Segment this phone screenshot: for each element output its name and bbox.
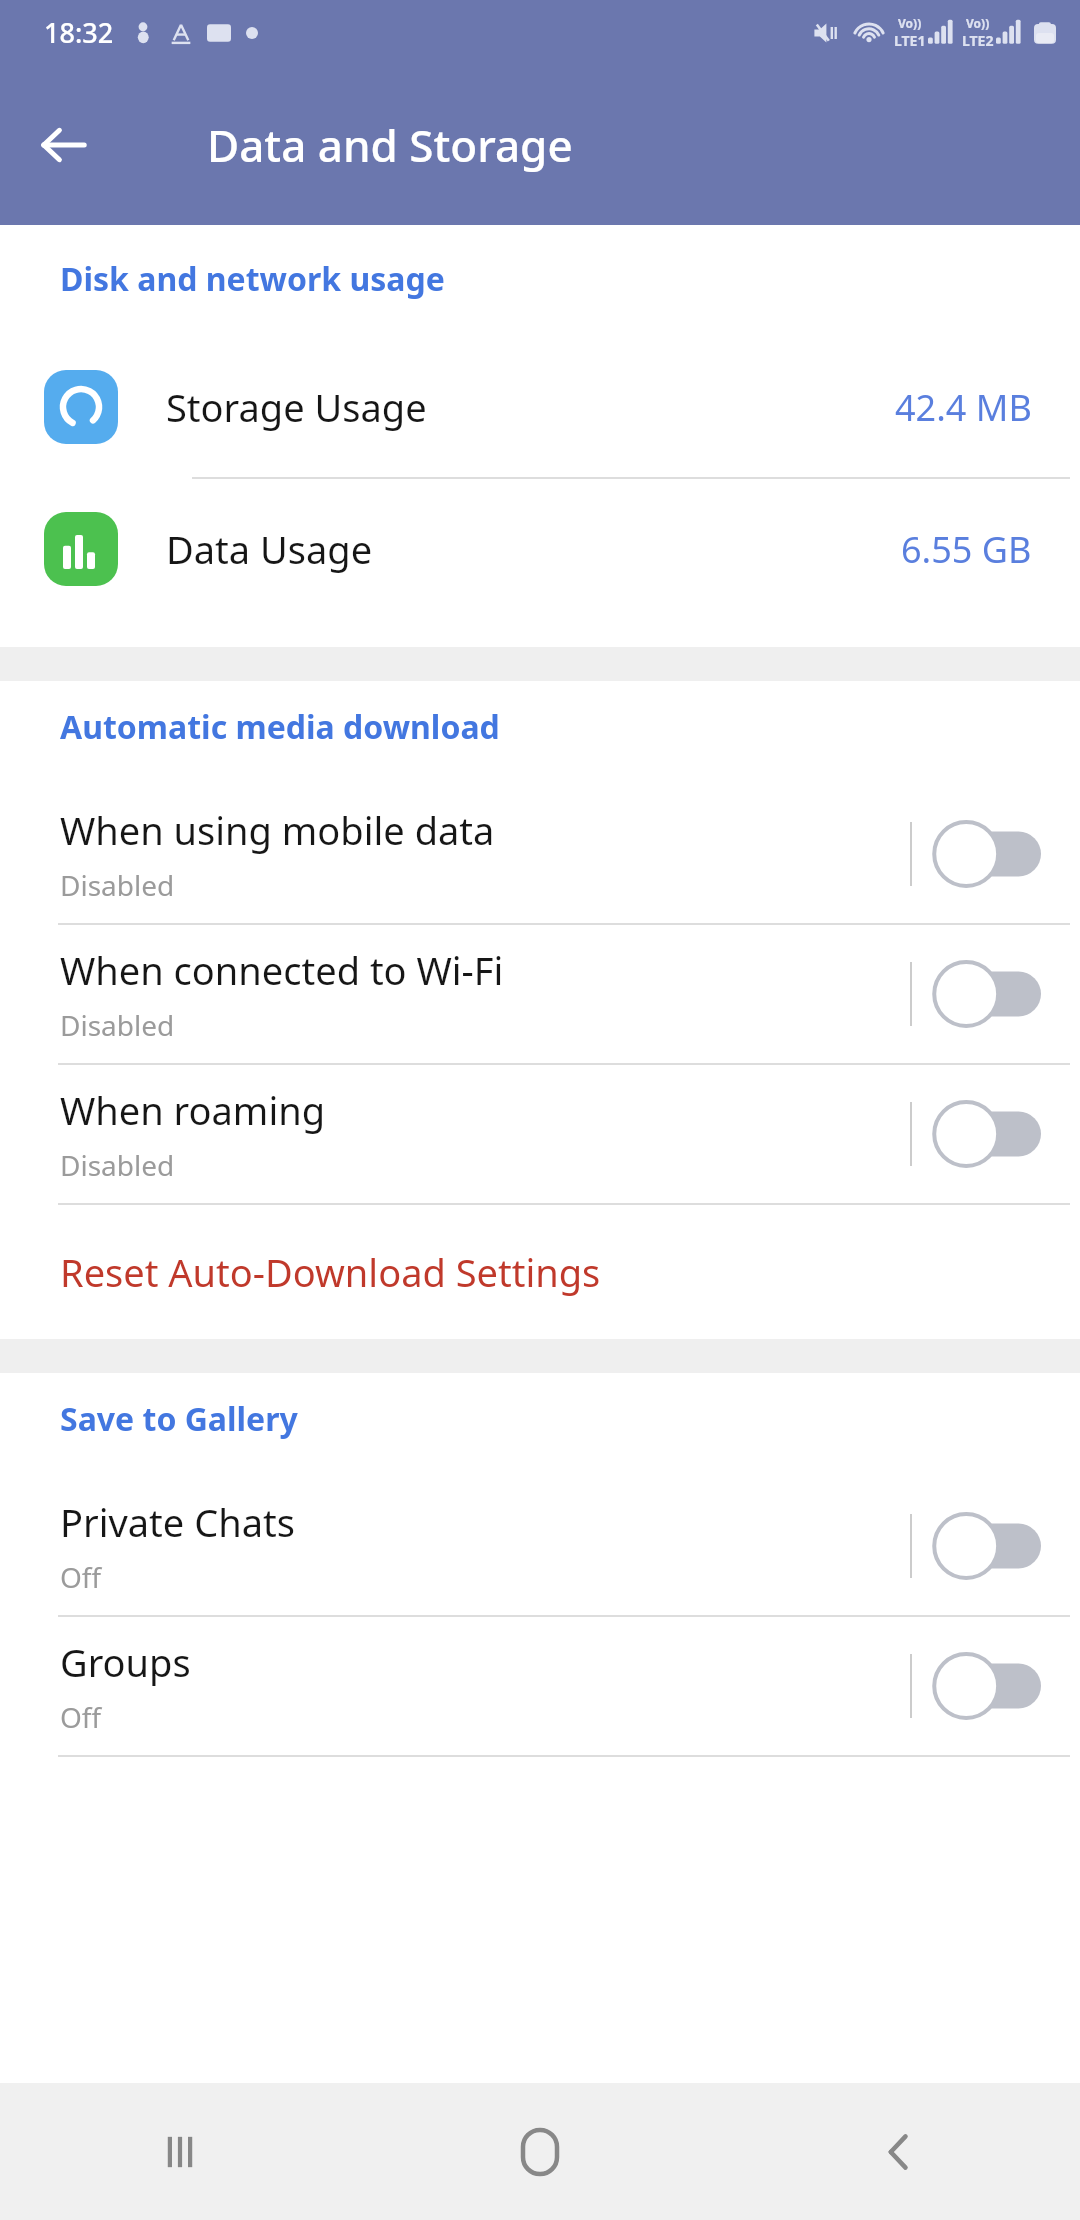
staticText: Private Chats [60,1496,295,1548]
staticText: When connected to Wi-Fi [60,944,504,996]
staticText: Save to Gallery [60,1397,298,1441]
button[interactable]: Groups toggle [912,1617,1060,1755]
button[interactable]: Groups [0,1617,1080,1755]
staticText: Disabled [60,1146,175,1184]
button[interactable]: Private Chats [0,1477,1080,1615]
staticText: Reset Auto-Download Settings [60,1246,601,1298]
staticText: Off [60,1558,102,1596]
staticText: Automatic media download [60,705,500,749]
button[interactable]: Reset Auto-Download Settings [0,1205,1080,1339]
staticText: Disabled [60,866,175,904]
staticText: LTE1 [894,31,926,50]
staticText: Disabled [60,1006,175,1044]
button[interactable]: Storage Usage [0,337,1080,477]
staticText: Storage Usage [166,381,895,433]
button[interactable]: When using mobile data [0,785,1080,923]
button[interactable]: Recents [0,2083,360,2220]
staticText: 6.55 GB [901,525,1032,574]
staticText: Disk and network usage [60,257,445,301]
button[interactable]: Data Usage [0,479,1080,619]
staticText: When roaming [60,1084,326,1136]
button[interactable]: When connected to Wi-Fi toggle [912,925,1060,1063]
button[interactable]: When roaming toggle [912,1065,1060,1203]
button[interactable]: Private Chats toggle [912,1477,1060,1615]
button[interactable]: When connected to Wi-Fi [0,925,1080,1063]
staticText: Groups [60,1636,191,1688]
staticText: Vo)) [966,15,990,31]
staticText: 18:32 [44,14,114,51]
staticText: LTE2 [962,31,994,50]
button[interactable]: Back [720,2083,1080,2220]
button[interactable]: When roaming [0,1065,1080,1203]
staticText: Vo)) [898,15,922,31]
staticText: When using mobile data [60,804,495,856]
staticText: Off [60,1698,102,1736]
staticText: 42.4 MB [895,383,1032,432]
staticText: Data Usage [166,523,901,575]
staticText: Data and Storage [207,115,573,175]
button[interactable]: Back [28,109,100,181]
button[interactable]: When using mobile data toggle [912,785,1060,923]
button[interactable]: Home [360,2083,720,2220]
